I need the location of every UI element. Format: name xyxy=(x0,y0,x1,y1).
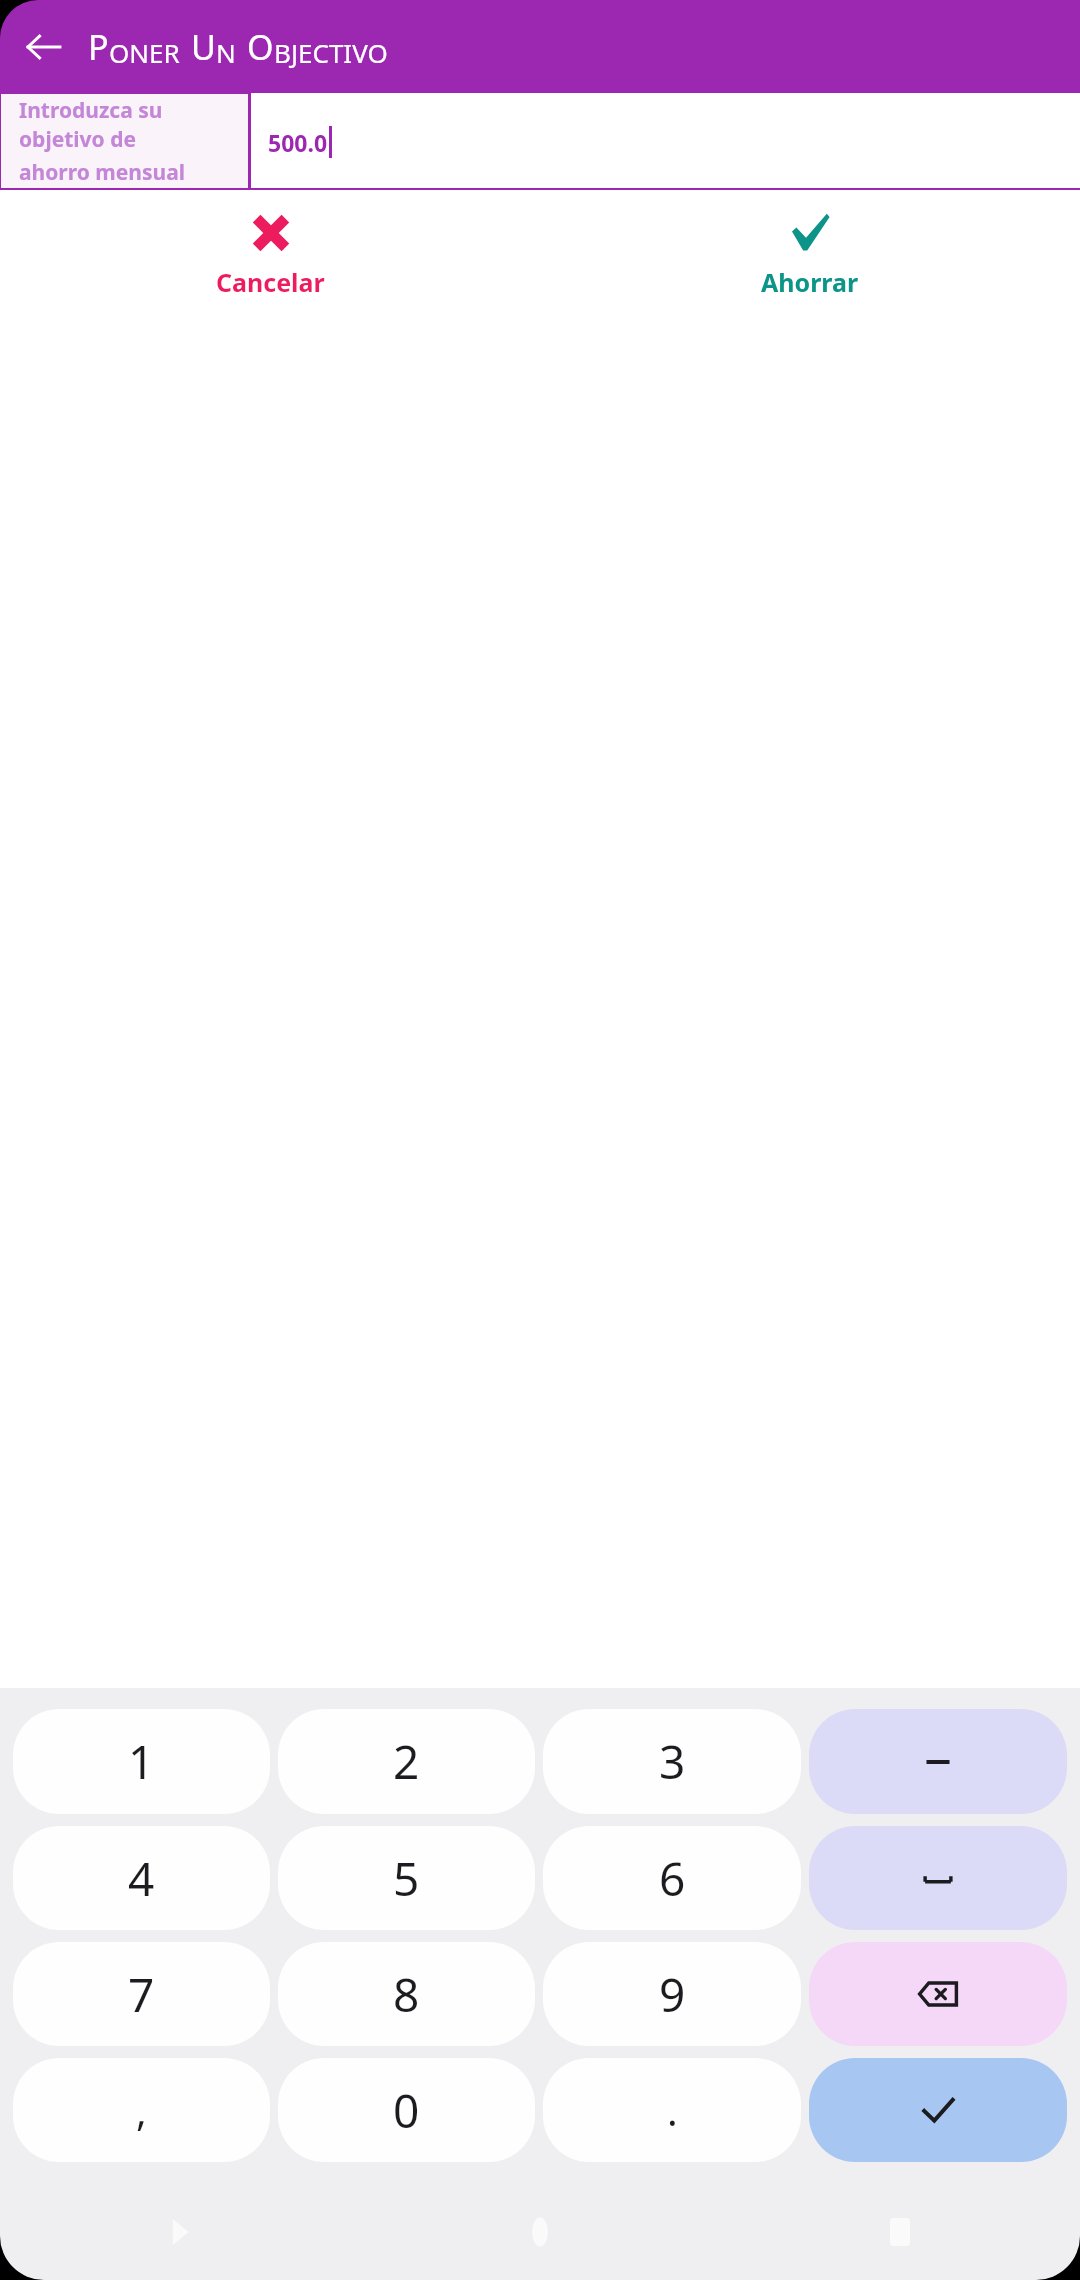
staticText: U xyxy=(191,24,216,70)
staticText: 5 xyxy=(393,1847,420,1910)
staticText: Ahorrar xyxy=(761,265,859,299)
staticText: N xyxy=(216,35,236,70)
button[interactable]: 5 xyxy=(278,1826,535,1930)
staticText: 4 xyxy=(128,1847,155,1910)
button[interactable]: 4 xyxy=(13,1826,270,1930)
staticText: 9 xyxy=(659,1963,686,2026)
button[interactable]: 0 xyxy=(278,2058,535,2162)
button[interactable]: Back xyxy=(10,14,76,80)
staticText: BJECTIVO xyxy=(274,35,388,70)
button[interactable]: 1 xyxy=(13,1709,270,1814)
button[interactable]: Ahorrar xyxy=(540,190,1080,312)
button[interactable]: 2 xyxy=(278,1709,535,1814)
staticText: 1 xyxy=(128,1730,155,1793)
button[interactable]: Recents xyxy=(720,2183,1080,2280)
staticText: . xyxy=(667,2083,678,2137)
staticText: Cancelar xyxy=(216,265,325,299)
button[interactable]: Space xyxy=(809,1826,1067,1930)
staticText: 500.0 xyxy=(268,127,328,158)
button[interactable]: Cancelar xyxy=(0,190,540,312)
button[interactable]: Backspace xyxy=(809,1942,1067,2046)
button[interactable]: Back xyxy=(0,2183,360,2280)
staticText: 2 xyxy=(393,1730,420,1793)
staticText: 0 xyxy=(393,2079,420,2142)
button[interactable]: 500.0 xyxy=(251,93,1080,190)
staticText: , xyxy=(136,2083,147,2137)
button[interactable]: Introduzca su objetivo de xyxy=(0,93,248,190)
staticText: O xyxy=(247,24,274,70)
button[interactable]: Minus xyxy=(809,1709,1067,1814)
button[interactable]: 8 xyxy=(278,1942,535,2046)
button[interactable]: Enter xyxy=(809,2058,1067,2162)
button[interactable]: . xyxy=(543,2058,801,2162)
staticText: Introduzca su objetivo de xyxy=(19,96,240,154)
staticText: 7 xyxy=(128,1963,155,2026)
staticText: ONER xyxy=(109,35,180,70)
staticText: P xyxy=(88,24,109,70)
button[interactable]: 7 xyxy=(13,1942,270,2046)
staticText: ahorro mensual xyxy=(19,158,185,187)
staticText: 6 xyxy=(659,1847,686,1910)
staticText: 8 xyxy=(393,1963,420,2026)
button[interactable]: 9 xyxy=(543,1942,801,2046)
button[interactable]: , xyxy=(13,2058,270,2162)
staticText: 3 xyxy=(659,1730,686,1793)
button[interactable]: 3 xyxy=(543,1709,801,1814)
button[interactable]: 6 xyxy=(543,1826,801,1930)
